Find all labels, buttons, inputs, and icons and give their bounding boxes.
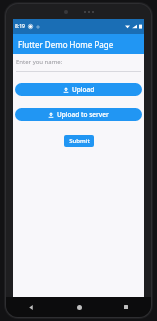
staticText: Upload to server [57,110,109,119]
button[interactable]: Back [24,300,38,314]
button[interactable]: Enter you name: [13,58,144,72]
staticText: Enter you name: [16,58,63,66]
staticText: Submit [69,137,90,145]
button[interactable]: Recent apps [119,300,133,314]
staticText: 8:19 [15,23,25,30]
staticText: Upload [72,85,95,94]
button[interactable]: Upload to server [15,108,142,121]
button[interactable]: Upload [15,83,142,96]
button[interactable]: Submit [64,135,94,147]
staticText: Flutter Demo Home Page [18,39,114,50]
button[interactable]: Home [72,300,86,314]
